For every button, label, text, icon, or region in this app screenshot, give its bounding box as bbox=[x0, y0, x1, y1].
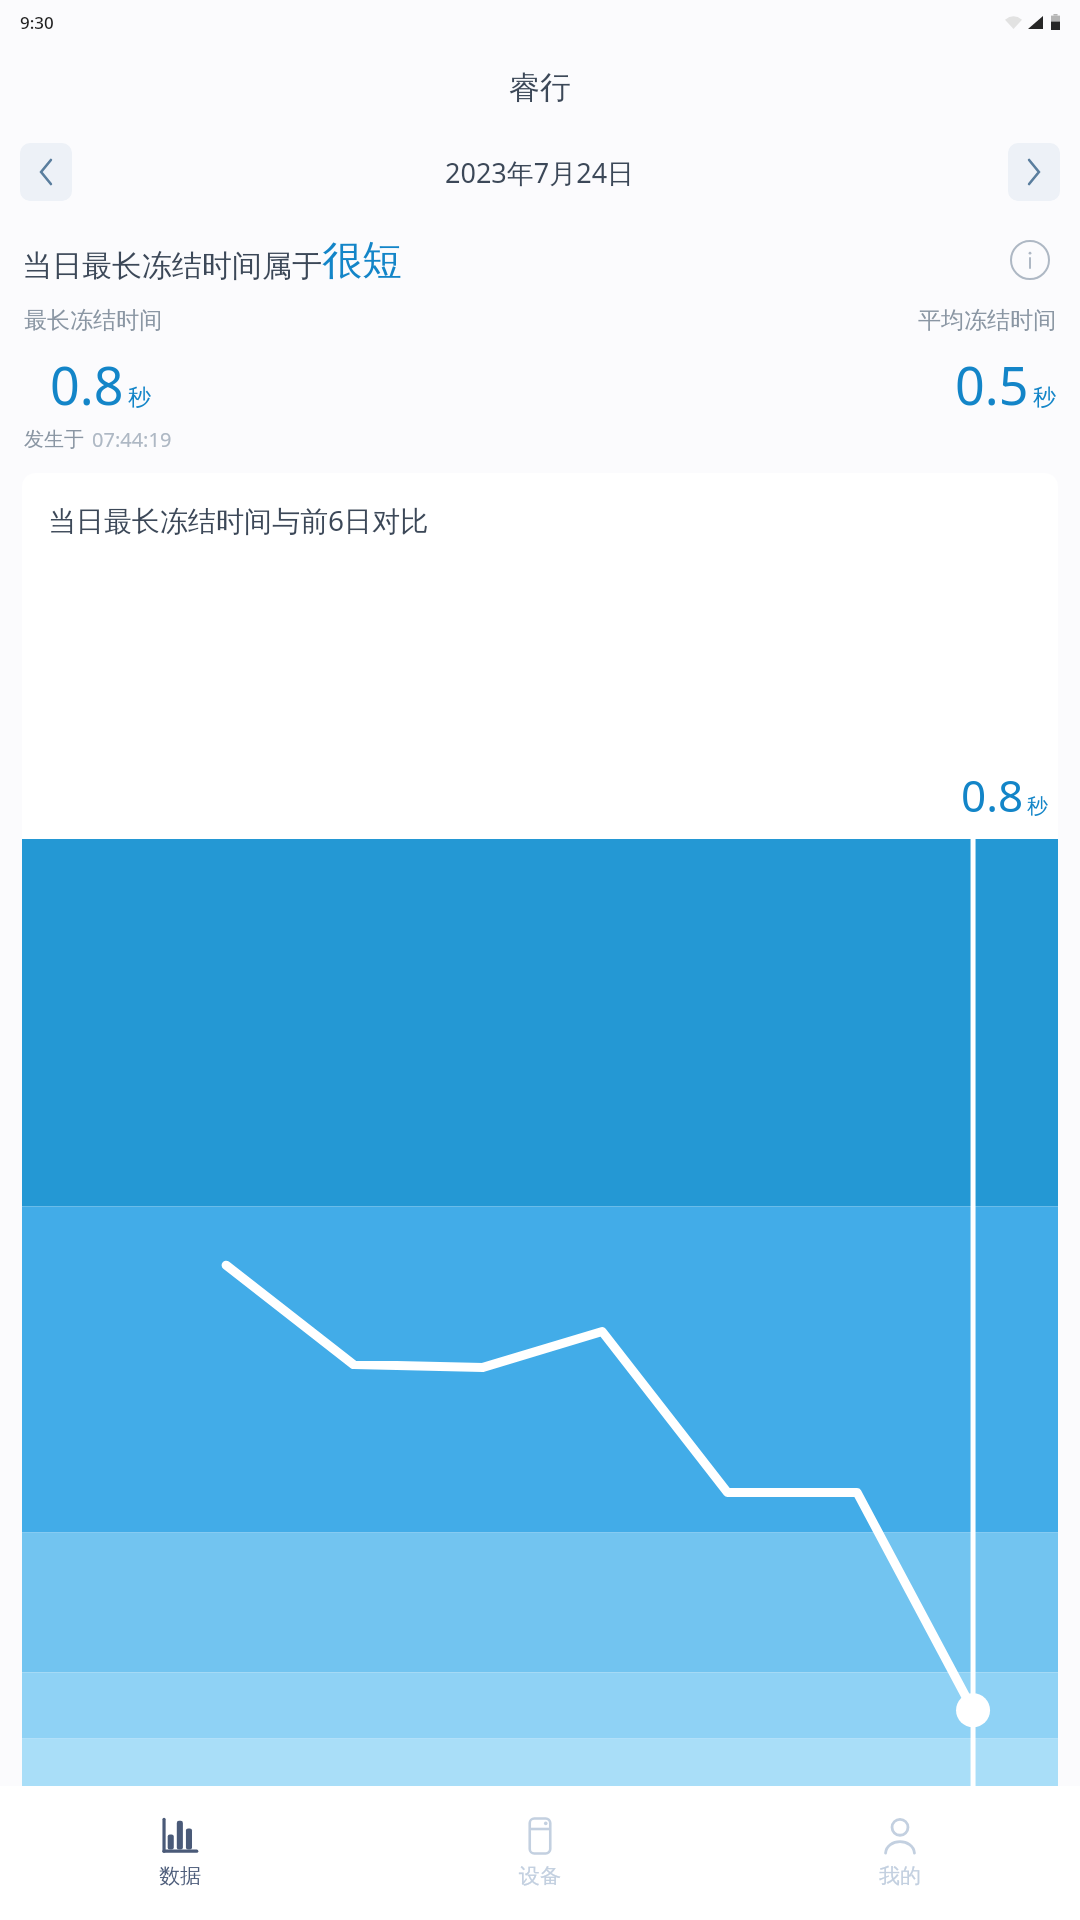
staticText: 发生于 bbox=[24, 427, 84, 452]
staticText: 睿行 bbox=[509, 68, 571, 107]
staticText: 秒 bbox=[128, 383, 151, 412]
staticText: 数据 bbox=[159, 1863, 201, 1889]
button[interactable]: 我的 bbox=[720, 1786, 1080, 1920]
staticText: 07:44:19 bbox=[92, 426, 172, 453]
button[interactable]: 数据 bbox=[0, 1786, 360, 1920]
staticText: 0.8 bbox=[50, 349, 124, 420]
staticText: 最长冻结时间 bbox=[24, 306, 162, 335]
staticText: 当日最长冻结时间属于 bbox=[22, 247, 322, 285]
button[interactable]: 设备 bbox=[360, 1786, 720, 1920]
staticText: 秒 bbox=[1027, 793, 1048, 819]
staticText: 0.8 bbox=[961, 765, 1024, 825]
staticText: 平均冻结时间 bbox=[918, 306, 1056, 335]
staticText: 设备 bbox=[519, 1863, 561, 1889]
staticText: 秒 bbox=[1033, 383, 1056, 412]
button[interactable]: Info bbox=[1006, 236, 1054, 284]
staticText: 很短 bbox=[322, 235, 402, 285]
staticText: 我的 bbox=[879, 1863, 921, 1889]
button[interactable]: Previous day bbox=[20, 143, 72, 201]
staticText: 当日最长冻结时间与前6日对比 bbox=[48, 501, 429, 539]
staticText: 0.5 bbox=[955, 349, 1029, 420]
button[interactable]: Next day bbox=[1008, 143, 1060, 201]
staticText: 2023年7月24日 bbox=[445, 154, 635, 191]
staticText: 9:30 bbox=[20, 11, 54, 34]
